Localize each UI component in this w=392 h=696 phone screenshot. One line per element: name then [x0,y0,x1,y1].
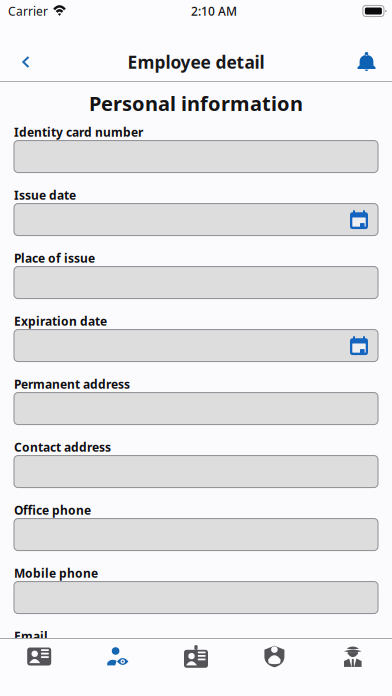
button[interactable] [14,267,378,299]
staticText: Expiration date [14,313,107,329]
button[interactable]: Position [314,639,392,696]
button[interactable] [14,645,378,677]
button[interactable] [14,456,378,488]
staticText: Employee detail [127,50,264,73]
button[interactable]: Identity card [0,639,78,696]
button[interactable]: Personal information [78,639,157,696]
staticText: Mobile phone [14,565,98,581]
staticText: Carrier [8,3,48,19]
button[interactable] [14,393,378,425]
staticText: Issue date [14,187,76,203]
button[interactable]: Back [0,43,51,81]
staticText: Contact address [14,439,111,455]
staticText: Permanent address [14,376,130,392]
button[interactable]: Insurance [235,639,314,696]
staticText: Personal information [89,90,303,117]
button[interactable] [14,519,378,551]
button[interactable] [14,582,378,614]
button[interactable] [14,141,378,173]
staticText: 2:10 AM [191,3,237,19]
staticText: Email [14,628,48,644]
button[interactable]: Work badge [157,639,235,696]
button[interactable] [14,330,378,362]
button[interactable]: Notifications [340,43,392,81]
button[interactable] [14,204,378,236]
staticText: Identity card number [14,124,143,140]
staticText: Office phone [14,502,91,518]
staticText: Place of issue [14,250,95,266]
